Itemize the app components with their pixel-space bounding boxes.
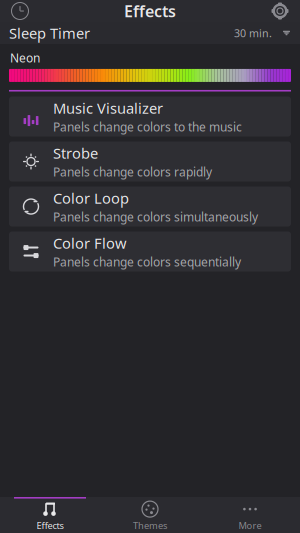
button[interactable]: Color Flow (9, 231, 291, 271)
button[interactable]: Color Loop (9, 186, 291, 226)
button[interactable]: Strobe (9, 141, 291, 181)
button[interactable]: Themes (100, 497, 200, 533)
staticText: Color Loop (53, 188, 129, 208)
staticText: Music Visualizer (53, 98, 163, 118)
button[interactable]: Music Visualizer (9, 96, 291, 136)
staticText: Themes (133, 519, 167, 531)
button[interactable]: Sleep Timer (0, 22, 300, 44)
staticText: Strobe (53, 143, 98, 163)
staticText: More (238, 519, 261, 531)
staticText: 30 min. (234, 26, 272, 40)
staticText: Panels change colors sequentially (53, 254, 241, 270)
staticText: Effects (36, 519, 63, 531)
staticText: Sleep Timer (9, 23, 90, 43)
staticText: Effects (124, 0, 176, 22)
staticText: Panels change colors simultaneously (53, 209, 258, 225)
button[interactable]: Neon theme colors (0, 66, 300, 82)
button[interactable]: Effects (0, 497, 100, 533)
staticText: Neon (10, 50, 40, 66)
button[interactable]: More (200, 497, 300, 533)
button[interactable]: Sleep timer (4, 0, 36, 23)
staticText: Panels change colors to the music (53, 119, 242, 135)
staticText: Panels change colors rapidly (53, 164, 212, 180)
button[interactable]: Settings (264, 0, 296, 23)
staticText: Color Flow (53, 233, 127, 253)
